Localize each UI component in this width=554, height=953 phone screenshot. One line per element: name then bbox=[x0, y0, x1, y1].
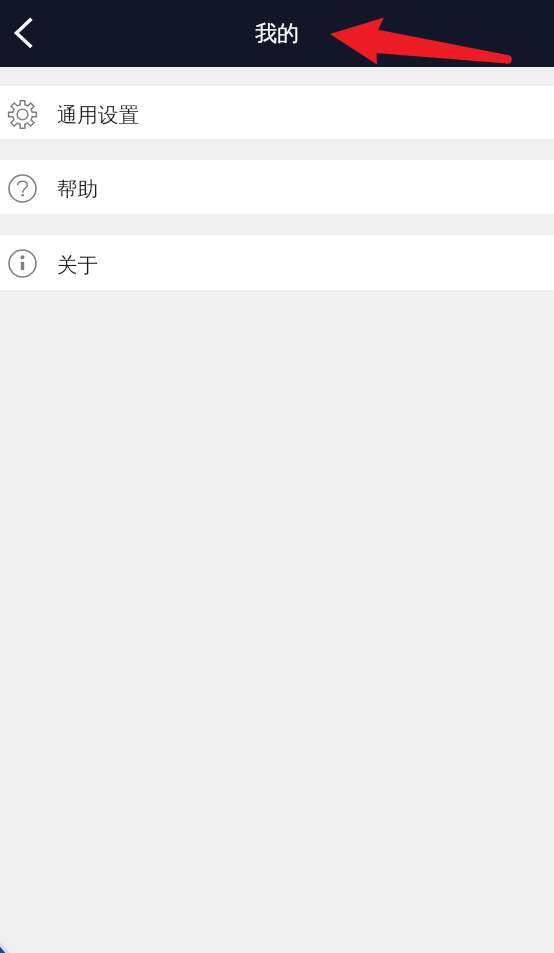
button[interactable]: 关于 bbox=[0, 235, 554, 290]
button[interactable]: 通用设置 bbox=[0, 86, 554, 139]
staticText: 关于 bbox=[57, 252, 98, 278]
staticText: 我的 bbox=[255, 20, 299, 48]
staticText: 帮助 bbox=[57, 176, 98, 202]
staticText: 通用设置 bbox=[57, 102, 139, 128]
button[interactable]: Back bbox=[0, 0, 52, 67]
button[interactable]: 帮助 bbox=[0, 160, 554, 214]
